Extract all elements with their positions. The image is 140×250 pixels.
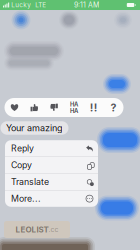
button[interactable]: Exclamation <box>84 98 104 117</box>
staticText: HA <box>70 101 78 108</box>
button[interactable]: Copy <box>5 157 98 173</box>
staticText: Lucky LTE <box>9 1 46 9</box>
button[interactable]: Love <box>5 98 24 117</box>
staticText: ? <box>110 101 116 114</box>
button[interactable]: Like <box>24 98 44 117</box>
staticText: Reply <box>11 143 34 154</box>
staticText: LEOLIST <box>15 225 48 234</box>
staticText: 9:11 AM <box>74 1 99 9</box>
button[interactable]: Haha <box>64 98 84 117</box>
staticText: HA <box>70 107 78 114</box>
staticText: Copy <box>11 160 32 170</box>
button[interactable]: More... <box>5 190 98 207</box>
button[interactable]: Reply <box>5 140 98 156</box>
staticText: Your amazing <box>6 122 63 133</box>
button[interactable]: Translate <box>5 174 98 190</box>
staticText: .cc <box>48 225 58 234</box>
staticText: More... <box>11 193 41 204</box>
staticText: !! <box>90 101 98 114</box>
staticText: Translate <box>11 177 49 187</box>
button[interactable]: Question mark <box>104 98 123 117</box>
button[interactable]: Dislike <box>44 98 64 117</box>
